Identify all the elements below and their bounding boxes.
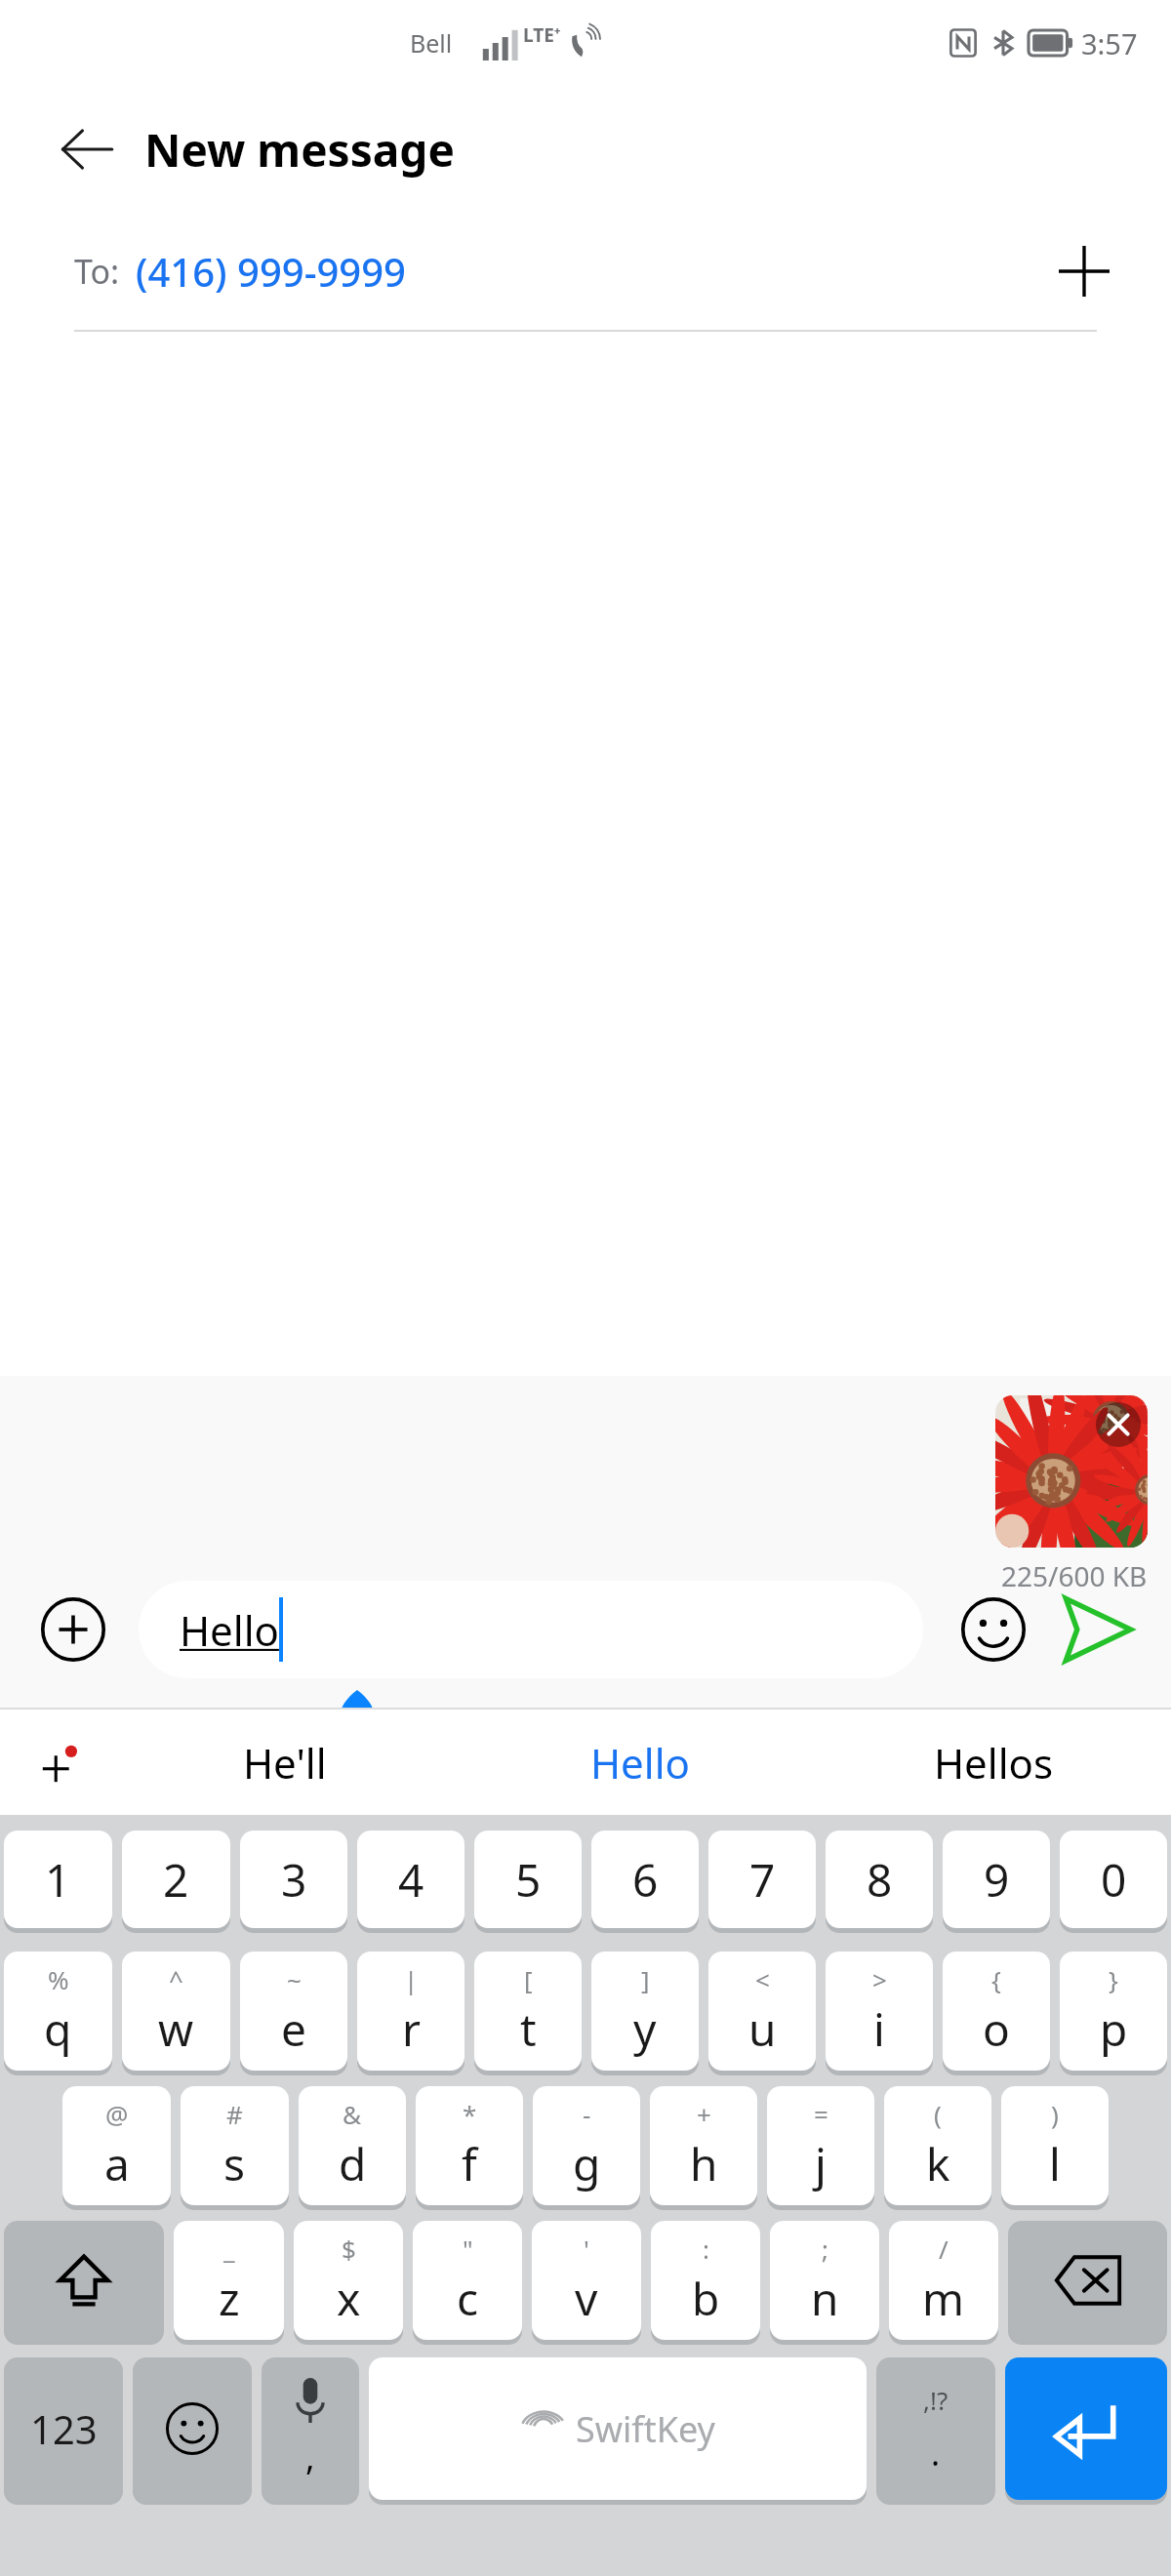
staticText: . bbox=[931, 2431, 941, 2475]
button[interactable]: ,!? bbox=[876, 2357, 995, 2500]
staticText: LTE⁺ bbox=[523, 22, 561, 48]
staticText: u bbox=[748, 1998, 777, 2060]
button[interactable]: ] bbox=[591, 1952, 699, 2071]
button[interactable]: Send bbox=[1046, 1579, 1148, 1680]
button[interactable]: = bbox=[767, 2086, 874, 2205]
staticText: # bbox=[226, 2097, 243, 2131]
button[interactable]: | bbox=[357, 1952, 464, 2071]
staticText: @ bbox=[105, 2097, 129, 2131]
staticText: > bbox=[872, 1962, 887, 1996]
button[interactable]: Remove attachment bbox=[995, 1395, 1148, 1548]
button[interactable]: ~ bbox=[240, 1952, 347, 2071]
staticText: Hello bbox=[590, 1735, 690, 1791]
button[interactable]: + bbox=[650, 2086, 757, 2205]
button[interactable]: ) bbox=[1001, 2086, 1109, 2205]
staticText: w bbox=[158, 1998, 194, 2060]
staticText: < bbox=[755, 1962, 770, 1996]
button[interactable]: } bbox=[1060, 1952, 1167, 2071]
button[interactable]: Hellos bbox=[817, 1710, 1171, 1815]
staticText: = bbox=[814, 2097, 828, 2131]
button[interactable]: Hello bbox=[463, 1710, 817, 1815]
staticText: Hello bbox=[180, 1602, 279, 1658]
button[interactable]: _ bbox=[174, 2221, 284, 2340]
staticText: 123 bbox=[30, 2402, 98, 2455]
button[interactable]: 3 bbox=[240, 1831, 347, 1928]
staticText: 3:57 bbox=[1081, 24, 1138, 62]
staticText: n bbox=[811, 2268, 839, 2329]
staticText: * bbox=[463, 2097, 477, 2131]
button[interactable]: Back bbox=[53, 115, 121, 183]
button[interactable]: ; bbox=[770, 2221, 879, 2340]
staticText: ( bbox=[934, 2097, 942, 2131]
staticText: p bbox=[1100, 1998, 1128, 2060]
button[interactable]: Backspace bbox=[1008, 2221, 1167, 2340]
button[interactable]: ( bbox=[884, 2086, 991, 2205]
button[interactable]: Remove attachment bbox=[1095, 1401, 1142, 1448]
staticText: | bbox=[404, 1962, 419, 1996]
staticText: ~ bbox=[287, 1962, 302, 1996]
button[interactable]: Voice input bbox=[262, 2357, 359, 2500]
other: Enter bbox=[1005, 2357, 1167, 2500]
button[interactable]: 9 bbox=[943, 1831, 1050, 1928]
button[interactable]: $ bbox=[294, 2221, 403, 2340]
staticText: & bbox=[343, 2097, 362, 2131]
button[interactable]: 123 bbox=[4, 2357, 123, 2500]
staticText: ,!? bbox=[923, 2383, 949, 2417]
button[interactable]: # bbox=[181, 2086, 289, 2205]
staticText: q bbox=[44, 1998, 72, 2060]
staticText: / bbox=[939, 2232, 949, 2266]
button[interactable]: More options bbox=[0, 1710, 107, 1815]
staticText: 4 bbox=[398, 1849, 424, 1911]
button[interactable]: Emoji keyboard bbox=[133, 2357, 252, 2500]
staticText: z bbox=[219, 2268, 240, 2329]
other: Space bbox=[369, 2357, 867, 2500]
button[interactable]: Shift bbox=[4, 2221, 164, 2340]
button[interactable]: Enter bbox=[1005, 2357, 1167, 2500]
staticText: 9 bbox=[984, 1849, 1010, 1911]
button[interactable]: 1 bbox=[4, 1831, 112, 1928]
staticText: 1 bbox=[45, 1849, 71, 1911]
button[interactable]: & bbox=[299, 2086, 406, 2205]
button[interactable]: Hello bbox=[139, 1581, 923, 1678]
button[interactable]: < bbox=[708, 1952, 816, 2071]
other: Backspace bbox=[1008, 2221, 1167, 2340]
button[interactable]: 7 bbox=[708, 1831, 816, 1928]
staticText: ' bbox=[584, 2232, 589, 2266]
button[interactable]: (416) 999-9999 bbox=[136, 245, 406, 298]
staticText: ] bbox=[641, 1962, 650, 1996]
staticText: m bbox=[922, 2268, 965, 2329]
button[interactable]: 2 bbox=[122, 1831, 230, 1928]
button[interactable]: ^ bbox=[122, 1952, 230, 2071]
staticText: SwiftKey bbox=[576, 2405, 715, 2453]
button[interactable]: > bbox=[826, 1952, 933, 2071]
staticText: 225/600 KB bbox=[1001, 1557, 1148, 1594]
button[interactable]: 5 bbox=[474, 1831, 582, 1928]
button[interactable]: 6 bbox=[591, 1831, 699, 1928]
button[interactable]: % bbox=[4, 1952, 112, 2071]
staticText: d bbox=[339, 2133, 367, 2194]
staticText: i bbox=[873, 1998, 885, 2060]
button[interactable]: : bbox=[651, 2221, 760, 2340]
button[interactable]: Add recipient bbox=[1040, 227, 1128, 315]
button[interactable]: { bbox=[943, 1952, 1050, 2071]
other: Voice input bbox=[262, 2357, 359, 2500]
button[interactable]: ' bbox=[532, 2221, 641, 2340]
button[interactable]: / bbox=[889, 2221, 998, 2340]
button[interactable]: " bbox=[413, 2221, 522, 2340]
button[interactable]: Space bbox=[369, 2357, 867, 2500]
button[interactable]: * bbox=[416, 2086, 523, 2205]
button[interactable]: 8 bbox=[826, 1831, 933, 1928]
staticText: " bbox=[463, 2232, 473, 2266]
button[interactable]: [ bbox=[474, 1952, 582, 2071]
button[interactable]: - bbox=[533, 2086, 640, 2205]
staticText: 8 bbox=[867, 1849, 893, 1911]
button[interactable]: Emoji bbox=[947, 1583, 1040, 1676]
button[interactable]: 0 bbox=[1060, 1831, 1167, 1928]
button[interactable]: He'll bbox=[107, 1710, 463, 1815]
button[interactable]: @ bbox=[62, 2086, 171, 2205]
button[interactable]: Add attachment bbox=[31, 1588, 115, 1671]
staticText: 0 bbox=[1101, 1849, 1127, 1911]
button[interactable]: 4 bbox=[357, 1831, 464, 1928]
staticText: 6 bbox=[632, 1849, 659, 1911]
staticText: g bbox=[573, 2133, 601, 2194]
